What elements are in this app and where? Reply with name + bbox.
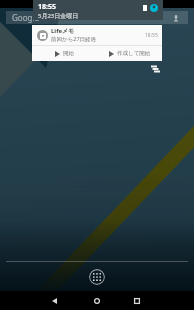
staticText: 開始 [63, 50, 74, 57]
staticText: 18:55 [145, 32, 158, 39]
staticText: Google [12, 12, 39, 23]
button[interactable]: Back [41, 291, 67, 310]
staticText: 前回から27日経過 [51, 35, 97, 43]
staticText: 作成して開始 [117, 50, 151, 57]
button[interactable]: Google [6, 11, 188, 24]
button[interactable]: Recents [124, 291, 150, 310]
button[interactable]: Apps [89, 269, 105, 285]
staticText: Lifeメモ [51, 27, 75, 35]
button[interactable]: 作成して開始 [97, 46, 162, 61]
button[interactable]: Home [84, 291, 110, 310]
button[interactable]: 開始 [32, 46, 97, 61]
staticText: 5月23日金曜日 [38, 12, 79, 20]
staticText: 18:55 [38, 2, 56, 12]
